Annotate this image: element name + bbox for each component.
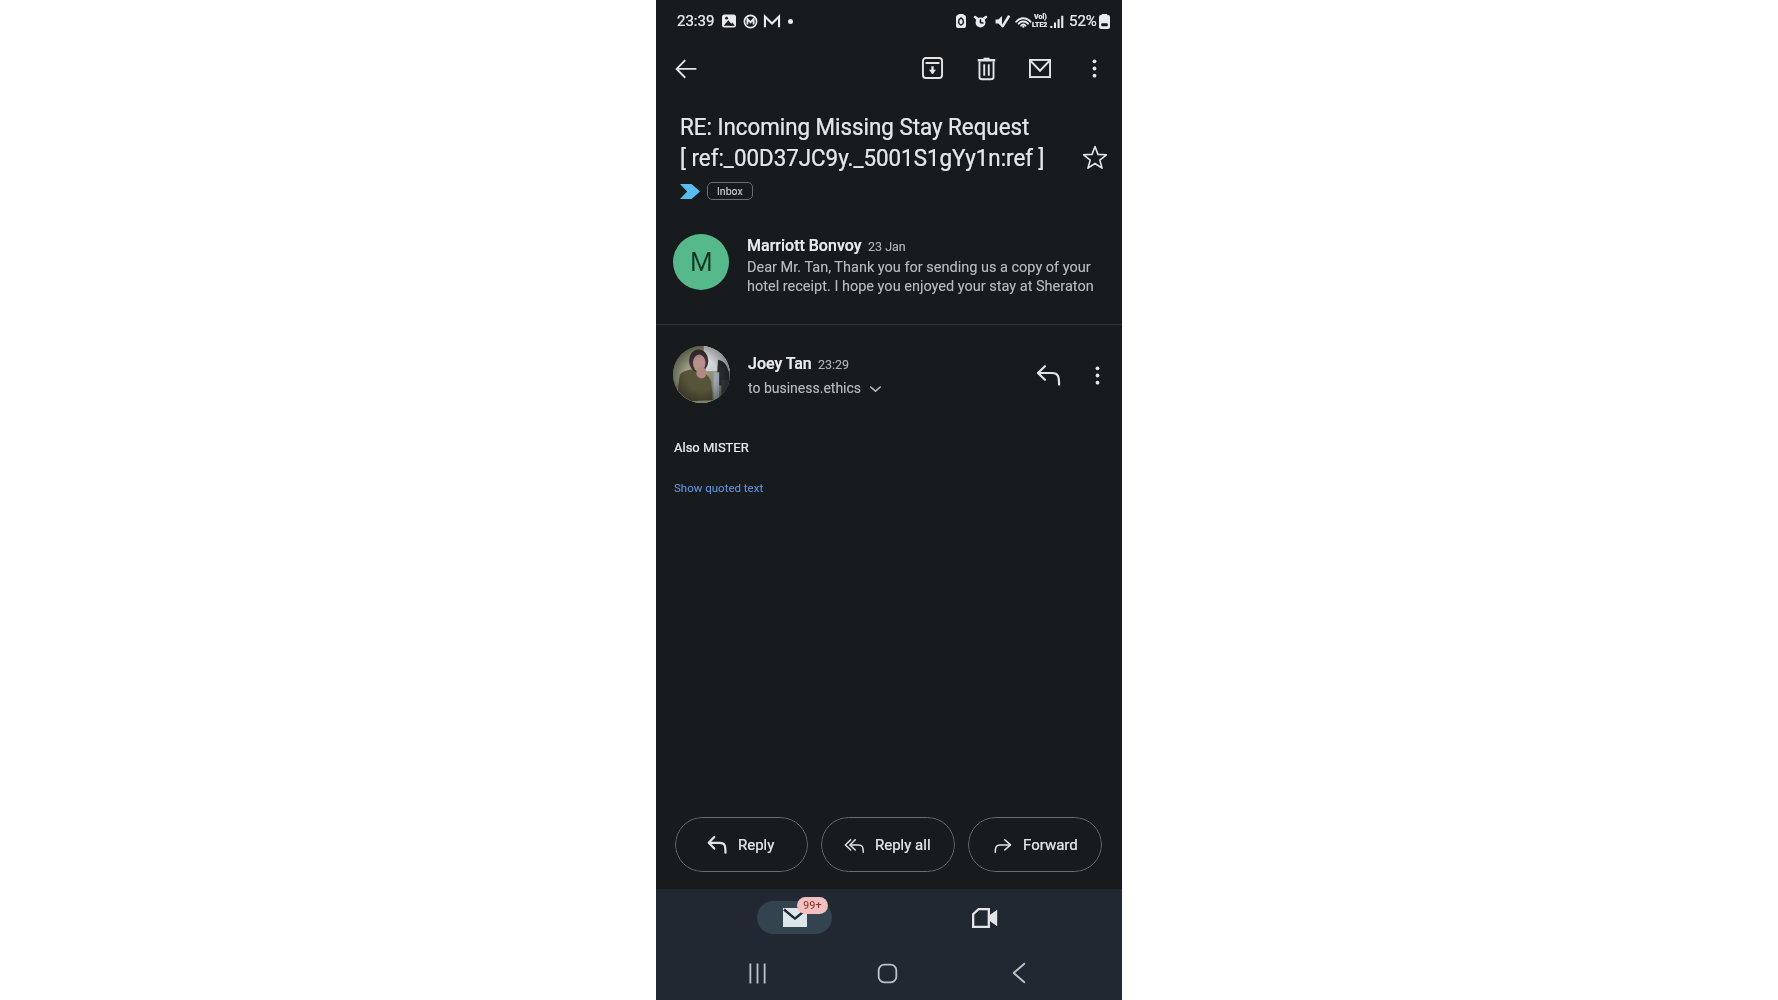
staticText: 23 Jan bbox=[868, 239, 906, 254]
button[interactable]: Back bbox=[666, 48, 706, 88]
button[interactable]: to business.ethics bbox=[748, 380, 883, 396]
staticText: Show quoted text bbox=[674, 481, 764, 494]
button[interactable]: Mail bbox=[757, 901, 832, 934]
staticText: Forward bbox=[1023, 836, 1078, 854]
button[interactable]: Forward bbox=[968, 817, 1102, 872]
button[interactable]: Recents bbox=[735, 951, 779, 995]
button[interactable]: More options bbox=[1074, 48, 1114, 88]
staticText: Reply all bbox=[875, 836, 931, 854]
staticText: 52% bbox=[1069, 12, 1097, 30]
staticText: Marriott Bonvoy bbox=[747, 236, 862, 255]
staticText: LTE2 bbox=[1032, 21, 1048, 29]
staticText: RE: Incoming Missing Stay Request [ ref:… bbox=[680, 113, 1050, 172]
button[interactable]: Home bbox=[865, 951, 909, 995]
staticText: Joey Tan bbox=[748, 354, 812, 373]
button[interactable]: Delete bbox=[966, 48, 1006, 88]
button[interactable]: Show quoted text bbox=[674, 481, 764, 494]
staticText: 99+ bbox=[803, 899, 822, 912]
staticText: 23:39 bbox=[677, 12, 715, 30]
staticText: Inbox bbox=[717, 185, 743, 197]
button[interactable]: M bbox=[656, 200, 1122, 324]
button[interactable]: Back bbox=[997, 951, 1041, 995]
button[interactable]: Reply bbox=[675, 817, 808, 872]
staticText: 23:29 bbox=[818, 357, 850, 372]
button[interactable]: Archive bbox=[912, 48, 952, 88]
button[interactable]: Reply all bbox=[821, 817, 955, 872]
button[interactable]: Reply bbox=[1029, 355, 1069, 395]
button[interactable]: Meet bbox=[962, 896, 1006, 940]
staticText: Vol) bbox=[1034, 13, 1047, 21]
staticText: Also MISTER bbox=[674, 440, 749, 455]
button[interactable]: More options bbox=[1077, 355, 1117, 395]
staticText: to business.ethics bbox=[748, 380, 862, 396]
staticText: M bbox=[690, 247, 713, 277]
button[interactable]: Mark unread bbox=[1020, 48, 1060, 88]
staticText: Reply bbox=[738, 836, 775, 854]
button[interactable]: Star bbox=[1075, 138, 1115, 178]
staticText: Dear Mr. Tan, Thank you for sending us a… bbox=[747, 259, 1101, 295]
